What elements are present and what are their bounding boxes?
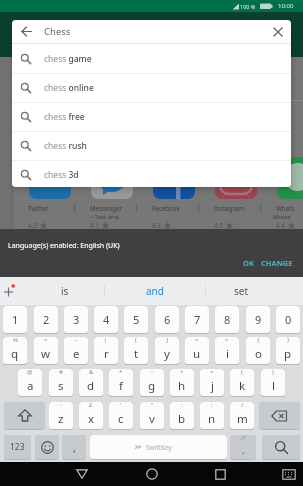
button[interactable]: 8: [215, 306, 239, 334]
button[interactable]: &: [79, 369, 103, 397]
staticText: u: [193, 346, 201, 362]
staticText: q: [11, 346, 19, 362]
button[interactable]: ~: [64, 337, 88, 365]
button[interactable]: 4: [94, 306, 118, 334]
staticText: ;: [211, 402, 213, 409]
staticText: Language(s) enabled: English (UK): [8, 241, 120, 251]
button[interactable]: [259, 402, 300, 430]
button[interactable]: 123: [4, 435, 31, 460]
button[interactable]: 7: [185, 306, 209, 334]
button[interactable]: /: [230, 402, 254, 430]
staticText: -: [60, 402, 62, 409]
staticText: x: [88, 411, 95, 427]
staticText: w: [41, 346, 51, 362]
button[interactable]: ): [261, 369, 285, 397]
staticText: e: [73, 346, 80, 362]
staticText: 0: [285, 312, 292, 327]
staticText: Messe: [273, 213, 291, 221]
staticText: v: [149, 411, 155, 427]
staticText: i: [226, 346, 229, 362]
staticText: 3: [73, 312, 80, 327]
button[interactable]: 2: [34, 306, 58, 334]
button[interactable]: set: [206, 277, 276, 305]
staticText: f: [119, 378, 123, 394]
button[interactable]: 0: [276, 306, 300, 334]
staticText: %: [13, 337, 18, 344]
button[interactable]: ]: [155, 337, 179, 365]
button[interactable]: .!?: [230, 435, 256, 460]
button[interactable]: £: [79, 402, 103, 430]
button[interactable]: }: [276, 337, 300, 365]
staticText: p: [284, 346, 292, 362]
button[interactable]: CHANGE: [258, 255, 296, 270]
staticText: chess online: [44, 82, 94, 94]
staticText: o: [255, 346, 262, 362]
staticText: 7: [194, 312, 201, 327]
button[interactable]: [68, 462, 96, 486]
button[interactable]: chess rush: [12, 131, 291, 160]
staticText: =: [210, 369, 214, 376]
staticText: 100 %: [240, 3, 256, 10]
button[interactable]: [275, 462, 303, 486]
button[interactable]: @: [18, 369, 42, 397]
button[interactable]: [264, 20, 291, 43]
button[interactable]: [262, 435, 300, 460]
staticText: 1: [12, 312, 19, 327]
button[interactable]: [138, 462, 166, 486]
button[interactable]: SwiftKey: [90, 435, 227, 460]
button[interactable]: [: [124, 337, 148, 365]
button[interactable]: is: [30, 277, 100, 305]
staticText: +: [180, 369, 184, 376]
staticText: n: [208, 411, 216, 427]
button[interactable]: 6: [155, 306, 179, 334]
staticText: {: [257, 337, 260, 344]
button[interactable]: +: [170, 369, 194, 397]
button[interactable]: [206, 462, 234, 486]
button[interactable]: OK: [236, 255, 260, 270]
button[interactable]: and: [117, 277, 193, 305]
button[interactable]: -: [49, 402, 73, 430]
staticText: -: [151, 369, 153, 376]
staticText: (: [241, 369, 243, 376]
staticText: [: [135, 337, 137, 344]
button[interactable]: ": [140, 402, 164, 430]
staticText: 4.3: [28, 221, 37, 230]
button[interactable]: 9: [246, 306, 270, 334]
staticText: h: [178, 378, 186, 394]
button[interactable]: [12, 20, 40, 43]
button[interactable]: -: [140, 369, 164, 397]
staticText: &: [89, 369, 94, 376]
button[interactable]: ^: [34, 337, 58, 365]
button[interactable]: #: [49, 369, 73, 397]
button[interactable]: chess free: [12, 102, 291, 131]
button[interactable]: [4, 402, 45, 430]
button[interactable]: ;: [200, 402, 224, 430]
staticText: chess free: [44, 111, 85, 123]
staticText: OK: [243, 258, 254, 268]
button[interactable]: |: [94, 337, 118, 365]
staticText: :: [181, 402, 183, 409]
button[interactable]: >: [215, 337, 239, 365]
button[interactable]: :: [170, 402, 194, 430]
button[interactable]: 1: [3, 306, 27, 334]
button[interactable]: %: [3, 337, 27, 365]
button[interactable]: ,: [62, 435, 86, 460]
button[interactable]: *: [109, 369, 133, 397]
button[interactable]: 5: [124, 306, 148, 334]
button[interactable]: (: [230, 369, 254, 397]
staticText: Facebook: [152, 204, 180, 212]
staticText: j: [211, 378, 214, 394]
staticText: CHANGE: [261, 258, 293, 268]
staticText: ]: [166, 337, 168, 344]
button[interactable]: chess online: [12, 73, 291, 102]
button[interactable]: chess 3d: [12, 160, 291, 187]
button[interactable]: [35, 435, 59, 460]
button[interactable]: {: [246, 337, 270, 365]
button[interactable]: chess game: [12, 44, 291, 73]
button[interactable]: <: [185, 337, 209, 365]
button[interactable]: ': [109, 402, 133, 430]
staticText: set: [234, 284, 249, 298]
button[interactable]: =: [200, 369, 224, 397]
staticText: s: [58, 378, 64, 394]
button[interactable]: 3: [64, 306, 88, 334]
